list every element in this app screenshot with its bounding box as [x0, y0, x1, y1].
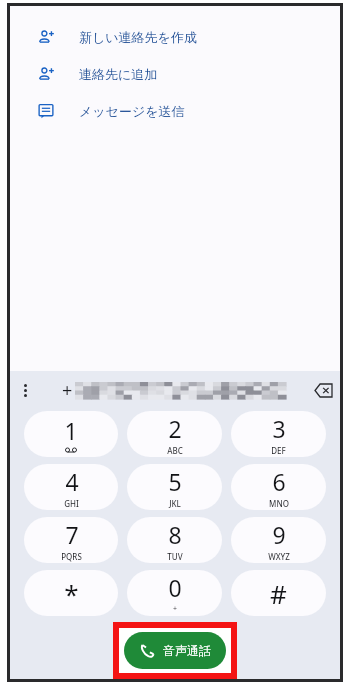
- staticText: 新しい連絡先を作成: [79, 29, 197, 45]
- staticText: PQRS: [61, 551, 82, 562]
- staticText: 0: [168, 572, 182, 603]
- button[interactable]: 音声通話: [124, 632, 226, 669]
- staticText: +: [173, 604, 178, 614]
- button[interactable]: *: [24, 570, 118, 616]
- staticText: 2: [168, 413, 182, 444]
- staticText: JKL: [169, 498, 181, 509]
- staticText: 1: [64, 415, 78, 446]
- staticText: *: [64, 576, 79, 611]
- staticText: 9: [272, 519, 286, 550]
- button[interactable]: 新しい連絡先を作成: [10, 18, 340, 55]
- button[interactable]: 9: [231, 517, 326, 563]
- staticText: 7: [65, 519, 79, 550]
- button[interactable]: 3: [231, 411, 326, 457]
- staticText: WXYZ: [268, 551, 290, 562]
- button[interactable]: 1: [24, 411, 118, 457]
- button[interactable]: 連絡先に追加: [10, 55, 340, 92]
- button[interactable]: 4: [24, 464, 118, 510]
- staticText: ABC: [167, 445, 183, 456]
- staticText: TUV: [167, 551, 183, 562]
- staticText: MNO: [269, 498, 289, 509]
- staticText: GHI: [64, 498, 79, 509]
- staticText: 3: [272, 413, 286, 444]
- button[interactable]: 2: [127, 411, 222, 457]
- staticText: DEF: [271, 445, 286, 456]
- button[interactable]: #: [231, 570, 326, 616]
- staticText: 4: [65, 466, 79, 497]
- staticText: #: [270, 576, 287, 611]
- button[interactable]: 0: [127, 570, 222, 616]
- button[interactable]: 7: [24, 517, 118, 563]
- staticText: +: [62, 378, 73, 403]
- staticText: 連絡先に追加: [79, 66, 158, 82]
- staticText: メッセージを送信: [79, 103, 185, 119]
- button[interactable]: Backspace: [306, 373, 340, 407]
- staticText: 音声通話: [163, 643, 211, 658]
- button[interactable]: More options: [10, 375, 40, 405]
- button[interactable]: メッセージを送信: [10, 92, 340, 129]
- button[interactable]: 8: [127, 517, 222, 563]
- button[interactable]: 6: [231, 464, 326, 510]
- staticText: 6: [272, 466, 286, 497]
- staticText: 5: [168, 466, 182, 497]
- button[interactable]: 5: [127, 464, 222, 510]
- staticText: 8: [168, 519, 182, 550]
